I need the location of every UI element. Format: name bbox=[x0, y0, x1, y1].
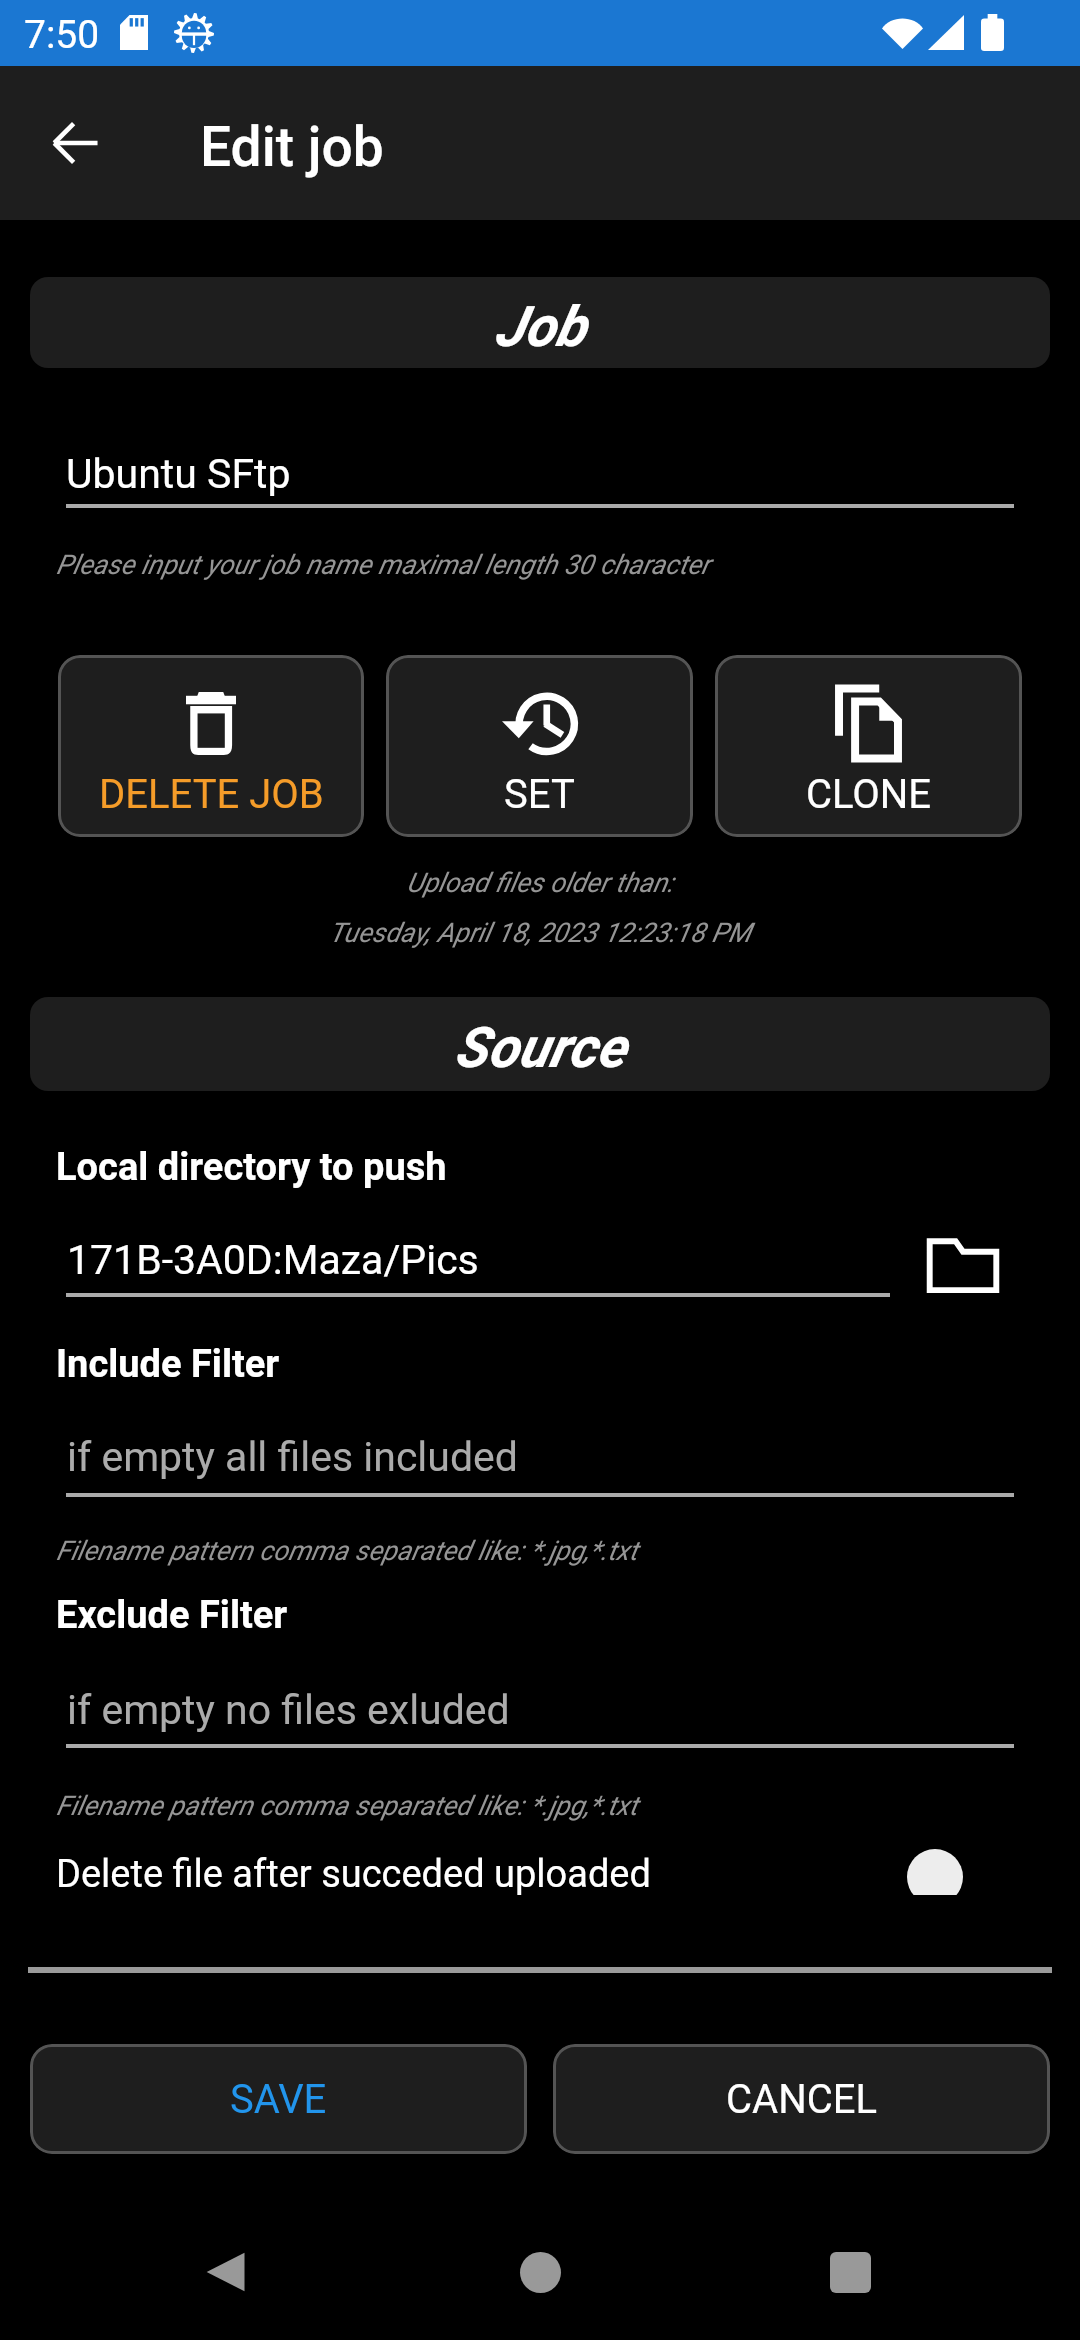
staticText: Include Filter bbox=[56, 1342, 280, 1387]
staticText: Filename pattern comma separated like: *… bbox=[56, 1790, 638, 1822]
staticText: Delete file after succeded uploaded bbox=[56, 1852, 651, 1895]
staticText: CANCEL bbox=[726, 2076, 877, 2123]
staticText: Local directory to push bbox=[56, 1145, 447, 1190]
staticText: Job bbox=[494, 294, 586, 360]
staticText: Exclude Filter bbox=[56, 1593, 288, 1638]
button[interactable]: Navigate up bbox=[27, 95, 123, 191]
staticText: SAVE bbox=[230, 2076, 327, 2123]
button[interactable]: SET bbox=[386, 655, 693, 837]
button[interactable]: DELETE JOB bbox=[58, 655, 364, 837]
staticText: 171B-3A0D:Maza/Pics bbox=[67, 1236, 479, 1284]
button[interactable]: Recent apps bbox=[814, 2236, 886, 2308]
staticText: SET bbox=[504, 771, 575, 818]
staticText: 7:50 bbox=[24, 12, 100, 58]
button[interactable]: Delete file after succeded uploaded bbox=[0, 1828, 1080, 1895]
staticText: Upload files older than: bbox=[0, 867, 1080, 899]
button[interactable]: CANCEL bbox=[553, 2044, 1050, 2154]
staticText: CLONE bbox=[806, 771, 932, 818]
staticText: if empty no files exluded bbox=[67, 1686, 510, 1734]
button[interactable]: Choose folder bbox=[918, 1220, 1008, 1310]
staticText: Filename pattern comma separated like: *… bbox=[56, 1535, 638, 1567]
staticText: DELETE JOB bbox=[99, 771, 324, 818]
button[interactable]: SAVE bbox=[30, 2044, 527, 2154]
button[interactable]: CLONE bbox=[715, 655, 1022, 837]
staticText: Edit job bbox=[200, 115, 384, 179]
staticText: Tuesday, April 18, 2023 12:23:18 PM bbox=[0, 917, 1080, 949]
staticText: if empty all files included bbox=[67, 1433, 518, 1481]
button[interactable]: Back bbox=[190, 2236, 262, 2308]
staticText: Please input your job name maximal lengt… bbox=[56, 549, 710, 581]
button[interactable]: Home bbox=[504, 2236, 576, 2308]
staticText: Ubuntu SFtp bbox=[66, 450, 291, 498]
staticText: Source bbox=[454, 1015, 626, 1081]
